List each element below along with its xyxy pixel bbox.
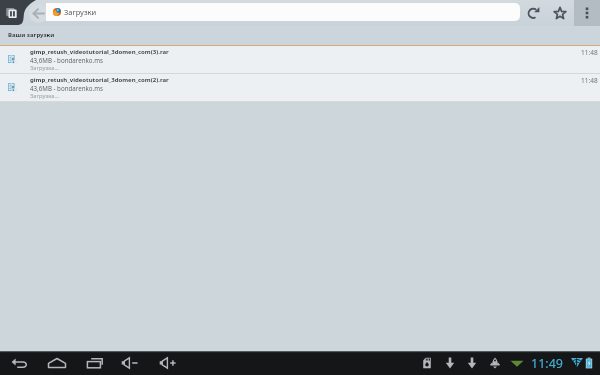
staticText: 11:49 <box>531 355 563 372</box>
button[interactable]: gimp_retush_videotutorial_3domen_com(3).… <box>0 46 600 73</box>
button[interactable]: Back <box>29 4 48 23</box>
staticText: Ваши загрузки <box>8 31 55 39</box>
staticText: 11:48 <box>581 48 598 57</box>
button[interactable]: Recent apps <box>83 352 105 374</box>
button[interactable]: Reload <box>523 2 545 24</box>
button[interactable]: gimp_retush_videotutorial_3domen_com(2).… <box>0 74 600 101</box>
staticText: gimp_retush_videotutorial_3domen_com(3).… <box>30 48 169 56</box>
button[interactable]: Bookmark <box>549 2 571 24</box>
button[interactable]: Download <box>439 352 461 374</box>
button[interactable]: Download <box>461 352 483 374</box>
button[interactable]: Volume up <box>157 352 179 374</box>
button[interactable]: Загрузки <box>46 3 520 21</box>
button[interactable]: More options <box>574 0 600 26</box>
button[interactable]: Home <box>46 352 68 374</box>
staticText: 43,6MB - bondarenko.ms <box>30 84 103 92</box>
staticText: gimp_retush_videotutorial_3domen_com(2).… <box>30 76 169 84</box>
button[interactable]: Play <box>506 352 528 374</box>
button[interactable]: Volume down <box>119 352 141 374</box>
staticText: Загрузки <box>64 7 97 17</box>
staticText: 43,6MB - bondarenko.ms <box>30 56 103 64</box>
staticText: 11:48 <box>581 76 598 85</box>
staticText: Загрузка... <box>30 64 60 72</box>
button[interactable]: Storage <box>416 352 438 374</box>
button[interactable]: Boost <box>484 352 506 374</box>
button[interactable]: Back <box>8 352 30 374</box>
button[interactable]: Wi-Fi <box>566 352 588 374</box>
button[interactable]: Battery <box>578 352 600 374</box>
button[interactable]: Tabs <box>4 5 18 19</box>
staticText: Загрузка... <box>30 92 60 100</box>
